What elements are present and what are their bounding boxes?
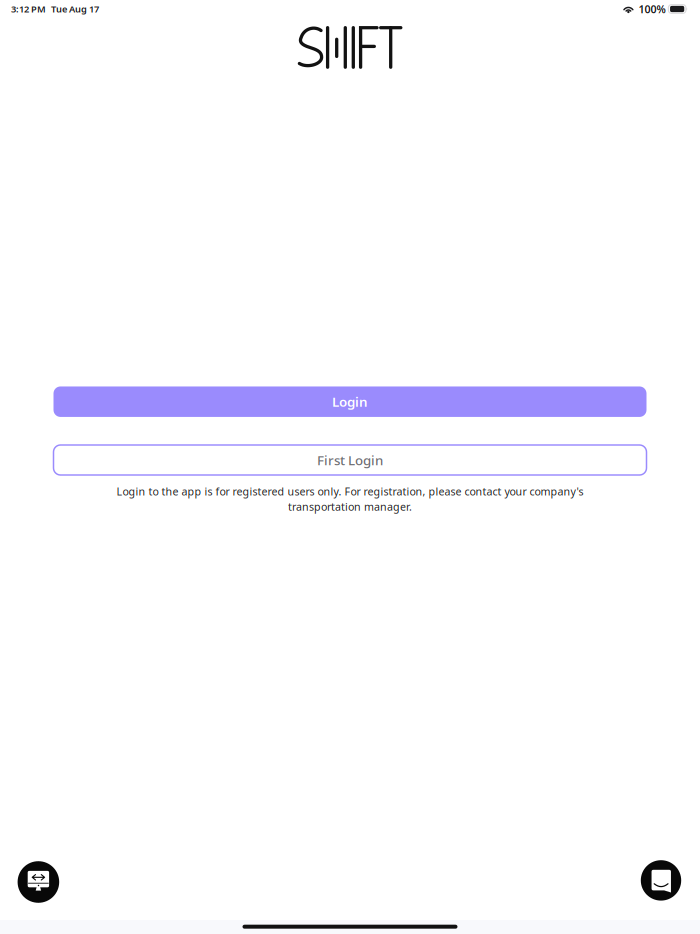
button[interactable]: Login: [53, 386, 646, 417]
staticText: Login to the app is for registered users…: [116, 484, 583, 498]
button[interactable]: First Login: [53, 445, 646, 475]
staticText: Login: [332, 393, 368, 410]
staticText: 3:12 PM: [11, 3, 46, 15]
staticText: Tue Aug 17: [51, 3, 99, 15]
staticText: transportation manager.: [288, 499, 412, 514]
staticText: 100%: [638, 2, 665, 16]
button[interactable]: Open chat: [641, 860, 681, 901]
staticText: First Login: [317, 451, 383, 469]
button[interactable]: Responsive preview: [18, 861, 59, 903]
